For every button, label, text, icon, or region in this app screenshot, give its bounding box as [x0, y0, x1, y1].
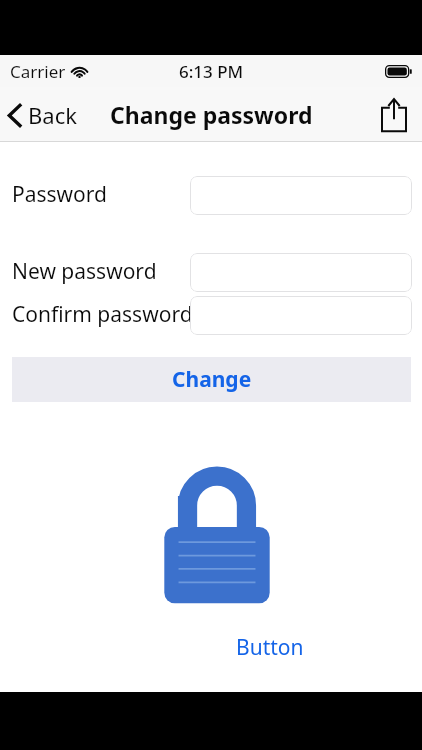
- staticText: Confirm password: [12, 300, 193, 329]
- staticText: Password: [12, 180, 107, 209]
- button[interactable]: [190, 253, 412, 292]
- button[interactable]: Back: [8, 100, 77, 130]
- staticText: 6:13 PM: [179, 60, 244, 83]
- button[interactable]: [190, 176, 412, 215]
- staticText: Carrier: [10, 60, 66, 83]
- button[interactable]: [190, 296, 412, 335]
- staticText: Back: [28, 100, 77, 130]
- staticText: Change password: [110, 99, 313, 130]
- staticText: New password: [12, 257, 157, 286]
- staticText: Change: [172, 365, 252, 394]
- staticText: Button: [236, 633, 304, 662]
- button[interactable]: Change: [12, 357, 411, 402]
- button[interactable]: Share: [379, 97, 409, 133]
- button[interactable]: Button: [170, 631, 370, 663]
